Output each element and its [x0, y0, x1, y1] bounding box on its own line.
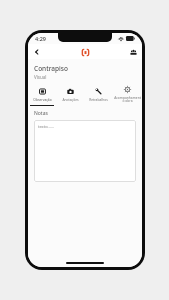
button[interactable]: texto...... — [34, 120, 136, 182]
staticText: texto...... — [38, 124, 55, 129]
button[interactable]: Anotações — [56, 84, 84, 105]
staticText: Visual — [34, 74, 47, 80]
button[interactable]: Retrabalhos — [84, 84, 113, 105]
button[interactable]: Back — [31, 46, 43, 58]
button[interactable]: Observação — [28, 84, 56, 105]
staticText: Retrabalhos — [89, 97, 108, 101]
button[interactable]: App logo — [79, 46, 91, 58]
button[interactable]: Acompanhamento obra — [113, 84, 142, 105]
staticText: Notas — [34, 110, 48, 117]
staticText: Observação — [33, 97, 52, 101]
staticText: 4:29 — [35, 35, 46, 42]
staticText: Anotações — [62, 97, 79, 101]
staticText: Contrapiso — [34, 64, 68, 73]
staticText: Acompanhamento obra — [114, 95, 141, 103]
button[interactable]: Team members — [127, 46, 139, 58]
